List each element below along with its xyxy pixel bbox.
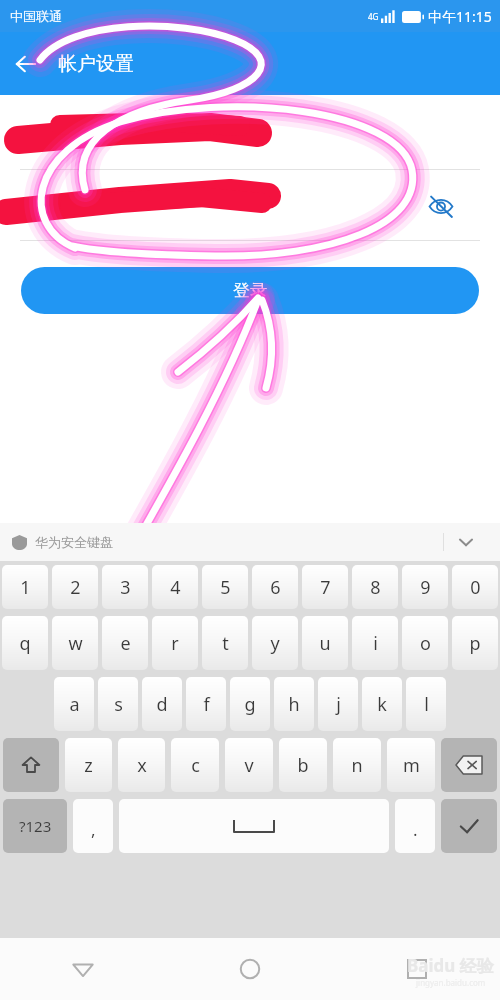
button[interactable]: Shift xyxy=(3,738,59,792)
button[interactable]: 显示密码 xyxy=(420,185,462,227)
button[interactable]: 最近任务 xyxy=(333,938,500,1000)
staticText: 2 xyxy=(70,575,81,600)
staticText: ?123 xyxy=(19,816,52,836)
button[interactable]: r xyxy=(152,616,198,670)
button[interactable]: 0 xyxy=(452,565,498,609)
button[interactable]: 6 xyxy=(252,565,298,609)
staticText: z xyxy=(84,753,93,778)
button[interactable]: k xyxy=(362,677,402,731)
staticText: v xyxy=(244,753,254,778)
button[interactable]: ?123 xyxy=(3,799,67,853)
staticText: f xyxy=(203,692,210,717)
button[interactable]: b xyxy=(279,738,327,792)
staticText: 8 xyxy=(370,575,381,600)
staticText: m xyxy=(403,753,420,778)
button[interactable]: 登录 xyxy=(21,267,479,314)
staticText: w xyxy=(68,631,83,656)
staticText: o xyxy=(420,631,431,656)
button[interactable]: o xyxy=(402,616,448,670)
staticText: 4 xyxy=(170,575,181,600)
staticText: r xyxy=(171,631,179,656)
staticText: x xyxy=(137,753,147,778)
button[interactable]: n xyxy=(333,738,381,792)
button[interactable]: g xyxy=(230,677,270,731)
staticText: l xyxy=(424,692,429,717)
button[interactable]: d xyxy=(142,677,182,731)
button[interactable]: 删除 xyxy=(441,738,497,792)
staticText: 华为安全键盘 xyxy=(35,534,113,550)
staticText: n xyxy=(351,753,363,778)
button[interactable]: 9 xyxy=(402,565,448,609)
button[interactable]: x xyxy=(118,738,165,792)
staticText: b xyxy=(297,753,309,778)
staticText: 1 xyxy=(20,575,31,600)
button[interactable]: 5 xyxy=(202,565,248,609)
button[interactable]: 1 xyxy=(2,565,48,609)
staticText: 帐户设置 xyxy=(58,52,134,76)
staticText: 0 xyxy=(470,575,481,600)
button[interactable]: u xyxy=(302,616,348,670)
staticText: jingyan.baidu.com xyxy=(416,977,486,988)
staticText: j xyxy=(336,692,341,717)
staticText: s xyxy=(114,692,123,717)
staticText: d xyxy=(156,692,168,717)
button[interactable]: j xyxy=(318,677,358,731)
button[interactable]: s xyxy=(98,677,138,731)
button[interactable]: 2 xyxy=(52,565,98,609)
staticText: 中国联通 xyxy=(10,8,62,24)
staticText: e xyxy=(120,631,131,656)
button[interactable]: h xyxy=(274,677,314,731)
staticText: q xyxy=(19,631,31,656)
button[interactable]: v xyxy=(225,738,273,792)
button[interactable]: . xyxy=(395,799,435,853)
button[interactable]: c xyxy=(171,738,219,792)
button[interactable]: a xyxy=(54,677,94,731)
button[interactable]: 主页 xyxy=(166,938,333,1000)
button[interactable]: q xyxy=(2,616,48,670)
button[interactable]: m xyxy=(387,738,435,792)
staticText: 中午11:15 xyxy=(428,7,492,26)
button[interactable]: , xyxy=(73,799,113,853)
staticText: c xyxy=(191,753,200,778)
staticText: 登录 xyxy=(233,280,267,301)
button[interactable]: w xyxy=(52,616,98,670)
button[interactable]: 确定 xyxy=(441,799,497,853)
staticText: 5 xyxy=(220,575,231,600)
button[interactable]: t xyxy=(202,616,248,670)
button[interactable]: 7 xyxy=(302,565,348,609)
button[interactable]: 返回 xyxy=(0,938,166,1000)
staticText: k xyxy=(377,692,387,717)
button[interactable]: e xyxy=(102,616,148,670)
staticText: 4G xyxy=(368,11,379,22)
staticText: 9 xyxy=(420,575,431,600)
staticText: i xyxy=(373,631,378,656)
staticText: Baidu 经验 xyxy=(407,954,494,977)
button[interactable]: y xyxy=(252,616,298,670)
button[interactable]: 收起键盘 xyxy=(444,523,488,561)
button[interactable]: f xyxy=(186,677,226,731)
staticText: u xyxy=(319,631,331,656)
button[interactable]: p xyxy=(452,616,498,670)
staticText: . xyxy=(413,818,418,841)
staticText: p xyxy=(469,631,481,656)
button[interactable]: i xyxy=(352,616,398,670)
button[interactable]: z xyxy=(65,738,112,792)
staticText: 6 xyxy=(270,575,281,600)
staticText: , xyxy=(91,818,96,841)
button[interactable]: 8 xyxy=(352,565,398,609)
staticText: 3 xyxy=(120,575,131,600)
button[interactable]: 空格 xyxy=(119,799,389,853)
staticText: y xyxy=(270,631,280,656)
button[interactable]: l xyxy=(406,677,446,731)
button[interactable]: 4 xyxy=(152,565,198,609)
staticText: h xyxy=(288,692,300,717)
staticText: a xyxy=(69,692,80,717)
staticText: t xyxy=(222,631,229,656)
staticText: g xyxy=(244,692,256,717)
button[interactable]: 3 xyxy=(102,565,148,609)
staticText: 7 xyxy=(320,575,331,600)
button[interactable]: 返回 xyxy=(0,38,52,90)
